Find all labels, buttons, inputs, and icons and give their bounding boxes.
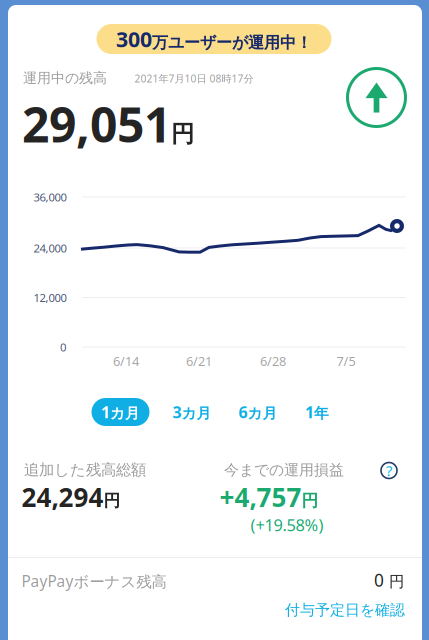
staticText: 6カ月 bbox=[238, 401, 277, 423]
staticText: 付与予定日を確認 bbox=[285, 601, 405, 619]
staticText: 追加した残高総額 bbox=[24, 460, 146, 480]
staticText: 6/21 bbox=[186, 352, 212, 370]
button[interactable]: 運用する bbox=[347, 68, 405, 126]
button[interactable]: 3カ月 bbox=[163, 398, 221, 426]
staticText: 1年 bbox=[305, 401, 329, 423]
button[interactable]: 付与予定日を確認 bbox=[285, 601, 405, 619]
button[interactable]: 運用損益について bbox=[379, 460, 399, 480]
staticText: 300万ユーザーが運用中！ bbox=[116, 25, 312, 53]
button[interactable]: 1カ月 bbox=[91, 398, 149, 426]
staticText: 7/5 bbox=[336, 352, 355, 370]
staticText: PayPayボーナス残高 bbox=[21, 570, 166, 591]
staticText: 2021年7月10日 08時17分 bbox=[134, 71, 253, 85]
staticText: ? bbox=[386, 460, 392, 480]
staticText: (+19.58%) bbox=[250, 514, 323, 536]
button[interactable]: 1年 bbox=[292, 398, 342, 426]
staticText: +4,757円 bbox=[219, 480, 318, 514]
staticText: 36,000 bbox=[33, 189, 66, 205]
staticText: 1カ月 bbox=[101, 401, 140, 423]
staticText: 24,000 bbox=[33, 240, 66, 256]
staticText: 0 bbox=[60, 339, 66, 355]
staticText: 24,294円 bbox=[21, 480, 120, 514]
staticText: 29,051円 bbox=[22, 92, 194, 156]
staticText: 6/14 bbox=[113, 352, 139, 370]
button[interactable]: 300万ユーザーが運用中！ bbox=[96, 24, 331, 54]
staticText: 6/28 bbox=[260, 352, 286, 370]
staticText: 今までの運用損益 bbox=[224, 461, 344, 479]
staticText: 運用中の残高 bbox=[23, 69, 107, 87]
staticText: 12,000 bbox=[33, 290, 66, 305]
staticText: 3カ月 bbox=[172, 401, 211, 423]
button[interactable]: 6カ月 bbox=[229, 398, 287, 426]
staticText: 0 円 bbox=[374, 568, 404, 591]
